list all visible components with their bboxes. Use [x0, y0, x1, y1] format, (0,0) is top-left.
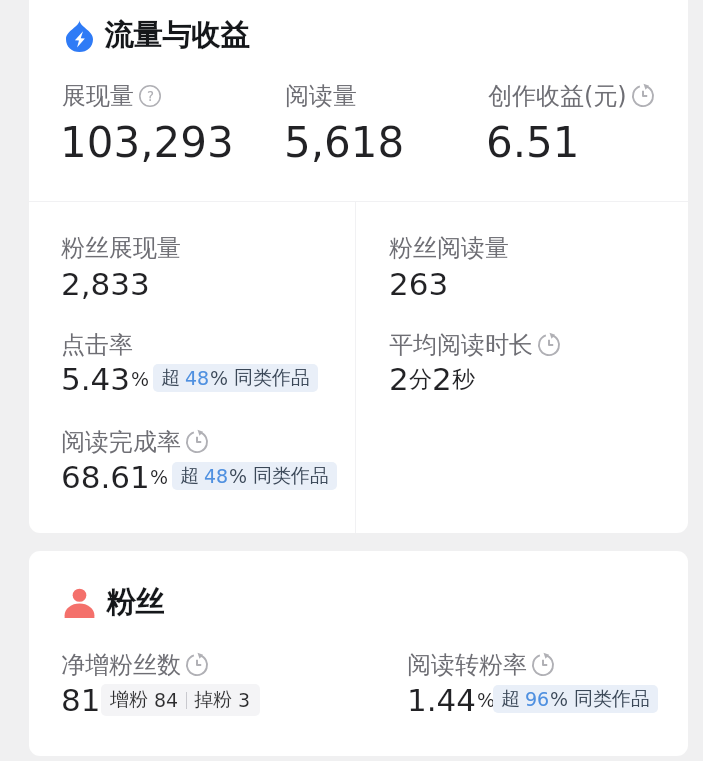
button[interactable]: 超	[153, 364, 318, 392]
staticText: 秒	[452, 365, 475, 394]
staticText: %	[210, 367, 229, 389]
staticText: 同类作品	[574, 687, 650, 711]
button[interactable]: Data update info	[532, 654, 554, 676]
staticText: 48	[185, 367, 210, 389]
staticText: 5.43	[61, 361, 131, 397]
staticText: 6.51	[486, 118, 580, 167]
staticText: 展现量	[62, 81, 134, 111]
button[interactable]: Data update info	[538, 334, 560, 356]
staticText: 81	[61, 682, 101, 718]
staticText: 84	[154, 689, 179, 711]
button[interactable]: 流量与收益	[66, 17, 249, 54]
staticText: %	[550, 688, 569, 710]
staticText: %	[150, 466, 169, 488]
staticText: 同类作品	[253, 464, 329, 488]
button[interactable]: Data update info	[186, 431, 208, 453]
staticText: 净增粉丝数	[61, 650, 181, 680]
staticText: 263	[389, 266, 449, 302]
staticText: 超	[180, 464, 199, 488]
staticText: 阅读完成率	[61, 427, 181, 457]
staticText: 流量与收益	[104, 17, 249, 54]
staticText: %	[477, 689, 496, 711]
staticText: ?	[147, 89, 154, 104]
staticText: %	[131, 368, 150, 390]
button[interactable]: 超	[493, 685, 658, 713]
staticText: 掉粉	[194, 688, 232, 712]
staticText: 平均阅读时长	[389, 330, 533, 360]
staticText: 粉丝阅读量	[389, 233, 509, 263]
staticText: 1.44	[407, 682, 477, 718]
staticText: 粉丝	[106, 584, 164, 621]
staticText: 阅读转粉率	[407, 650, 527, 680]
staticText: 分	[409, 365, 432, 394]
staticText: 阅读量	[285, 81, 357, 111]
staticText: 68.61	[61, 459, 150, 495]
button[interactable]: 超	[172, 462, 337, 490]
button[interactable]: Data update info	[186, 654, 208, 676]
staticText: 96	[525, 688, 550, 710]
button[interactable]: Help	[139, 85, 161, 107]
staticText: 2,833	[61, 266, 150, 302]
button[interactable]: 增粉	[101, 684, 260, 716]
staticText: 2	[389, 361, 409, 397]
button[interactable]: Data update info	[632, 85, 654, 107]
staticText: 103,293	[60, 118, 234, 167]
staticText: 48	[204, 465, 229, 487]
staticText: 创作收益(元)	[488, 81, 627, 111]
staticText: 增粉	[110, 688, 148, 712]
button[interactable]: 粉丝	[64, 584, 164, 621]
staticText: 同类作品	[234, 366, 310, 390]
staticText: 粉丝展现量	[61, 233, 181, 263]
staticText: 点击率	[61, 330, 133, 360]
staticText: 超	[501, 687, 520, 711]
staticText: %	[229, 465, 248, 487]
staticText: 超	[161, 366, 180, 390]
staticText: 2	[432, 361, 452, 397]
staticText: 3	[238, 689, 251, 711]
staticText: 5,618	[284, 118, 405, 167]
